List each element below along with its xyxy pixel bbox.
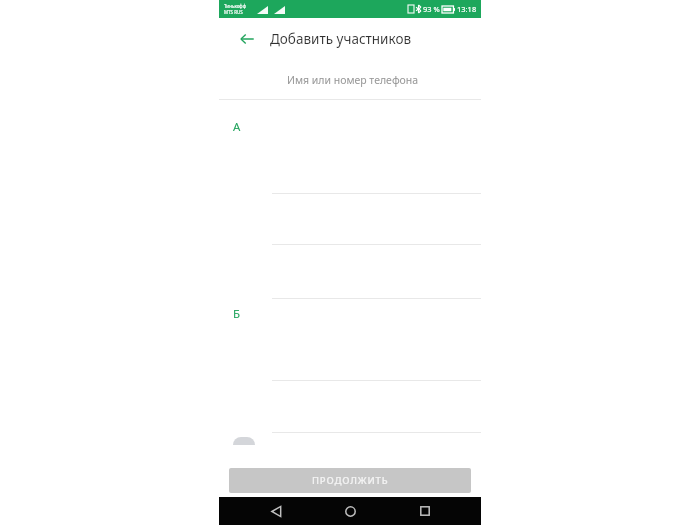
- staticText: Б: [233, 306, 241, 322]
- button[interactable]: [219, 192, 481, 245]
- button[interactable]: Back: [228, 20, 266, 58]
- button[interactable]: [219, 380, 481, 433]
- button[interactable]: Home: [332, 497, 368, 525]
- staticText: Имя или номер телефона: [287, 73, 419, 87]
- button[interactable]: Back: [258, 497, 294, 525]
- button[interactable]: ПРОДОЛЖИТЬ: [229, 468, 471, 493]
- staticText: 93 %: [423, 4, 440, 14]
- staticText: А: [233, 119, 241, 135]
- staticText: 13:18: [457, 4, 477, 14]
- staticText: Добавить участников: [270, 30, 412, 48]
- staticText: MTS RUS: [224, 9, 243, 15]
- staticText: Тинькофф: [224, 3, 246, 9]
- button[interactable]: Имя или номер телефона: [219, 60, 481, 99]
- staticText: ПРОДОЛЖИТЬ: [312, 474, 389, 487]
- button[interactable]: Recent apps: [407, 497, 443, 525]
